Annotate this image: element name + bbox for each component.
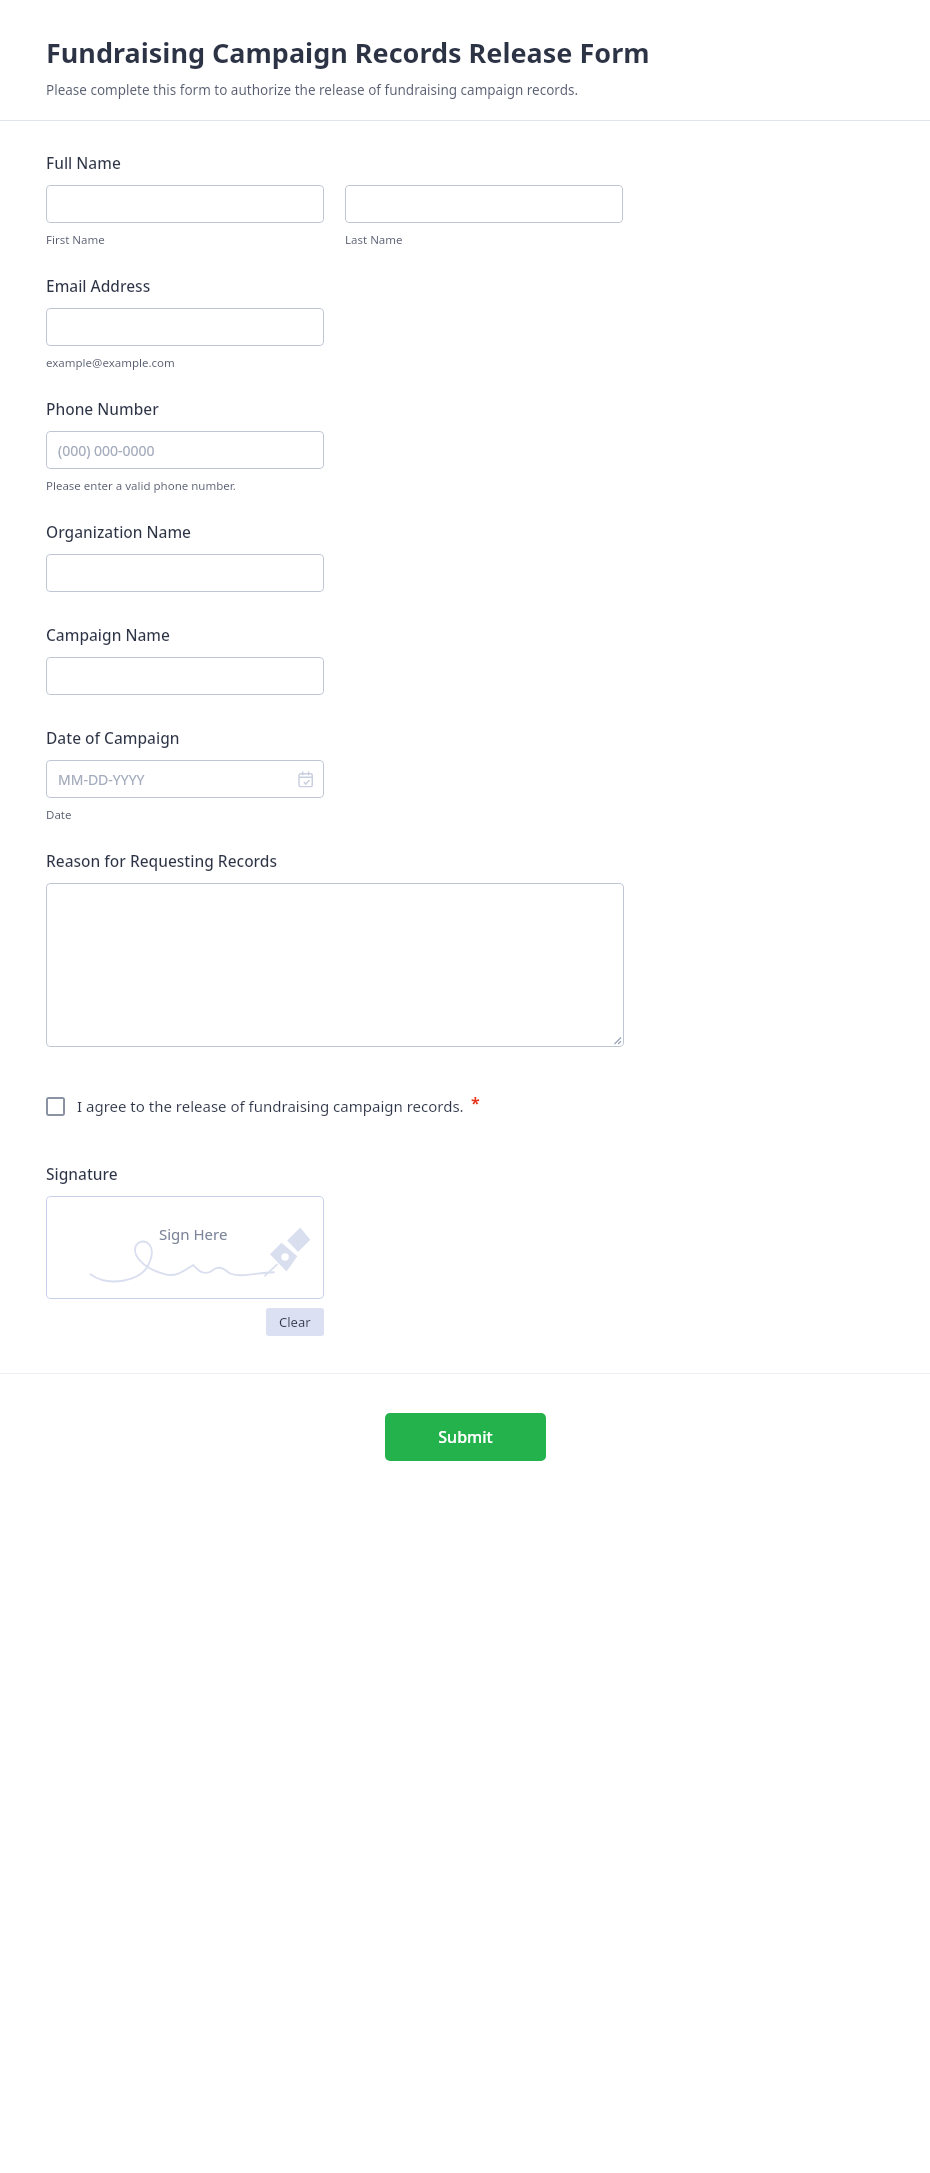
- staticText: Reason for Requesting Records: [46, 850, 277, 871]
- button[interactable]: I agree to the release of fundraising ca…: [46, 1092, 480, 1120]
- staticText: Organization Name: [46, 521, 192, 542]
- staticText: example@example.com: [46, 355, 175, 371]
- button[interactable]: [46, 308, 324, 346]
- button[interactable]: [46, 883, 624, 1047]
- staticText: Date: [46, 807, 72, 823]
- staticText: First Name: [46, 232, 105, 248]
- staticText: Campaign Name: [46, 624, 170, 645]
- staticText: Sign Here: [159, 1224, 228, 1244]
- staticText: Date of Campaign: [46, 727, 180, 748]
- button[interactable]: Submit: [385, 1413, 546, 1461]
- staticText: Fundraising Campaign Records Release For…: [46, 34, 650, 71]
- staticText: Please enter a valid phone number.: [46, 478, 236, 494]
- button[interactable]: Signature pad: [46, 1196, 324, 1299]
- button[interactable]: (000) 000-0000: [46, 431, 324, 469]
- staticText: Phone Number: [46, 398, 159, 419]
- staticText: (000) 000-0000: [58, 441, 155, 460]
- button[interactable]: Clear: [266, 1308, 324, 1336]
- button[interactable]: [46, 657, 324, 695]
- staticText: Last Name: [345, 232, 403, 248]
- staticText: MM-DD-YYYY: [58, 770, 145, 789]
- button[interactable]: [345, 185, 623, 223]
- button[interactable]: MM-DD-YYYY: [46, 760, 324, 798]
- staticText: Email Address: [46, 275, 151, 296]
- staticText: Full Name: [46, 152, 121, 173]
- button[interactable]: [46, 554, 324, 592]
- staticText: I agree to the release of fundraising ca…: [77, 1096, 464, 1116]
- staticText: Please complete this form to authorize t…: [46, 81, 579, 99]
- staticText: *: [471, 1092, 480, 1114]
- staticText: Clear: [279, 1313, 311, 1331]
- button[interactable]: Open date picker: [298, 771, 315, 788]
- staticText: Signature: [46, 1163, 118, 1184]
- button[interactable]: [46, 185, 324, 223]
- staticText: Submit: [438, 1426, 493, 1448]
